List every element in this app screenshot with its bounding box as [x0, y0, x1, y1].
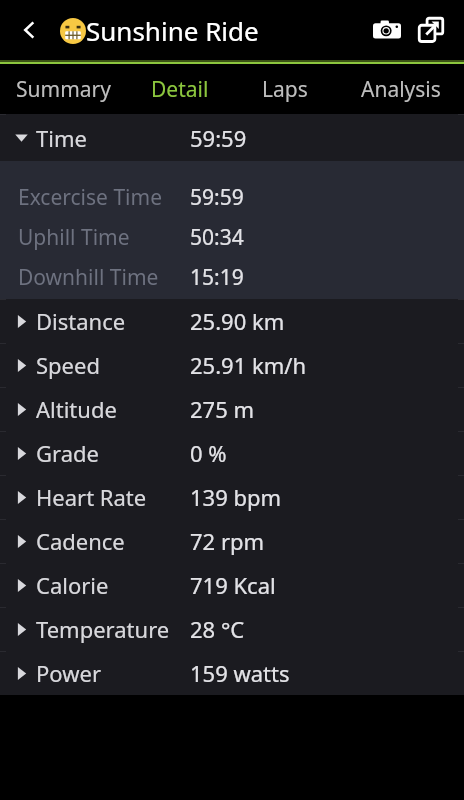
staticText: Distance	[36, 306, 126, 336]
button[interactable]: Grade	[0, 431, 464, 475]
staticText: 139 bpm	[190, 482, 282, 512]
button[interactable]: Calorie	[0, 563, 464, 607]
staticText: Laps	[262, 75, 308, 104]
button[interactable]: Excercise Time	[0, 177, 464, 217]
staticText: Speed	[36, 350, 100, 380]
staticText: Summary	[16, 75, 111, 104]
staticText: 159 watts	[190, 658, 290, 688]
button[interactable]: Analysis	[337, 64, 464, 114]
button[interactable]: Speed	[0, 343, 464, 387]
button[interactable]: Downhill Time	[0, 257, 464, 297]
button[interactable]: Detail	[127, 64, 232, 114]
staticText: Sunshine Ride	[86, 13, 259, 48]
button[interactable]: Uphill Time	[0, 217, 464, 257]
button[interactable]: Power	[0, 651, 464, 695]
button[interactable]: Camera	[368, 11, 406, 49]
staticText: 59:59	[190, 123, 247, 153]
staticText: 0 %	[190, 438, 227, 468]
staticText: Downhill Time	[18, 263, 159, 292]
button[interactable]: Altitude	[0, 387, 464, 431]
button[interactable]: Summary	[0, 64, 127, 114]
staticText: 25.90 km	[190, 306, 285, 336]
staticText: 719 Kcal	[190, 570, 276, 600]
button[interactable]: Share	[412, 11, 450, 49]
staticText: Calorie	[36, 570, 109, 600]
staticText: Uphill Time	[18, 223, 130, 252]
button[interactable]: Heart Rate	[0, 475, 464, 519]
staticText: Time	[36, 123, 87, 153]
staticText: Grade	[36, 438, 99, 468]
staticText: Detail	[151, 75, 209, 104]
staticText: 72 rpm	[190, 526, 265, 556]
staticText: Cadence	[36, 526, 125, 556]
staticText: Analysis	[361, 75, 441, 104]
staticText: 275 m	[190, 394, 255, 424]
staticText: Temperature	[36, 614, 170, 644]
button[interactable]: Temperature	[0, 607, 464, 651]
button[interactable]: Time	[0, 114, 464, 161]
staticText: 25.91 km/h	[190, 350, 307, 380]
staticText: 50:34	[190, 223, 244, 252]
staticText: 28 °C	[190, 614, 245, 644]
staticText: 59:59	[190, 183, 244, 212]
button[interactable]: Back	[8, 8, 52, 52]
button[interactable]: Laps	[232, 64, 337, 114]
button[interactable]: Distance	[0, 299, 464, 343]
button[interactable]: Cadence	[0, 519, 464, 563]
staticText: Altitude	[36, 394, 117, 424]
staticText: Power	[36, 658, 101, 688]
staticText: Excercise Time	[18, 183, 162, 212]
staticText: Heart Rate	[36, 482, 147, 512]
staticText: 15:19	[190, 263, 244, 292]
